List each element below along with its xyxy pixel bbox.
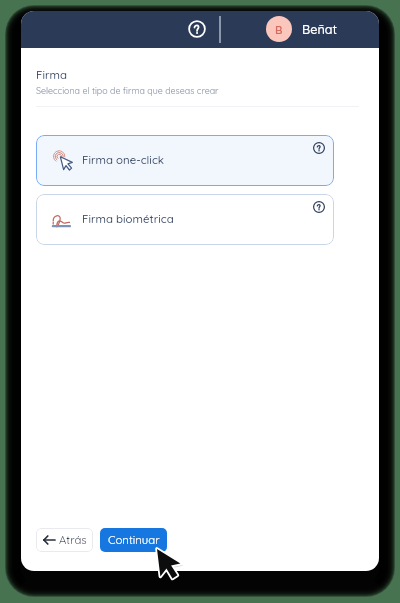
button[interactable]: Informacion [310,139,328,157]
staticText: Atrás [59,533,87,547]
staticText: Continuar [108,533,160,547]
button[interactable]: Atrás [36,528,93,552]
button[interactable]: Informacion [310,198,328,216]
staticText: Selecciona el tipo de firma que deseas c… [36,85,219,96]
button[interactable]: Ayuda [184,16,210,42]
button[interactable]: B [262,12,342,45]
button[interactable]: Firma biométrica [36,194,334,245]
staticText: Firma one-click [82,153,165,167]
staticText: Firma biométrica [82,212,174,226]
button[interactable]: Continuar [100,528,167,552]
staticText: Firma [36,68,67,82]
staticText: B [275,22,283,36]
staticText: Beñat [302,21,338,37]
button[interactable]: Firma one-click [36,135,334,186]
